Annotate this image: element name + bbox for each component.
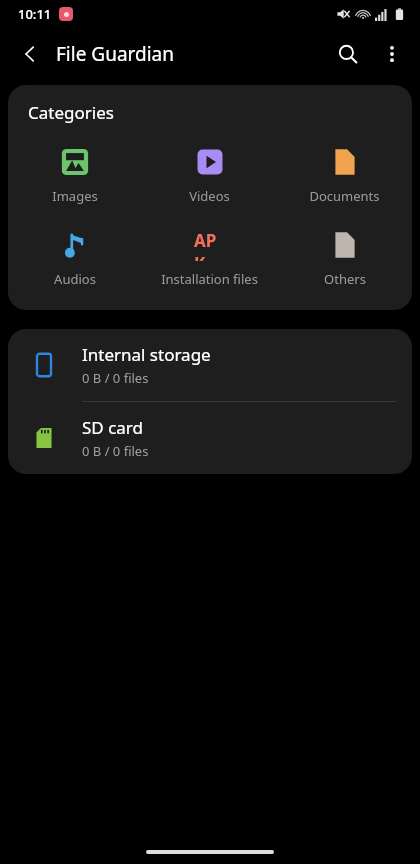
staticText: Internal storage (82, 343, 211, 366)
button[interactable]: More options (370, 32, 414, 76)
staticText: 0 B / 0 files (82, 442, 149, 460)
staticText: Documents (309, 187, 380, 205)
button[interactable]: Others (277, 225, 412, 292)
button[interactable]: Documents (277, 142, 412, 209)
staticText: SD card (82, 416, 143, 439)
button[interactable]: Search (326, 32, 370, 76)
staticText: File Guardian (56, 41, 175, 67)
staticText: APK (194, 229, 226, 261)
button[interactable]: Videos (142, 142, 277, 209)
button[interactable]: Images (8, 142, 142, 209)
staticText: Installation files (161, 270, 258, 288)
button[interactable]: Audios (8, 225, 142, 292)
staticText: Audios (54, 270, 96, 288)
staticText: Images (52, 187, 98, 205)
button[interactable]: SD card (8, 402, 412, 474)
button[interactable]: Back (8, 32, 52, 76)
staticText: Videos (189, 187, 230, 205)
staticText: Categories (28, 101, 114, 124)
button[interactable]: Internal storage (8, 329, 412, 401)
staticText: 0 B / 0 files (82, 369, 149, 387)
staticText: Others (324, 270, 366, 288)
staticText: 10:11 (18, 5, 52, 23)
button[interactable]: APK (142, 225, 277, 292)
